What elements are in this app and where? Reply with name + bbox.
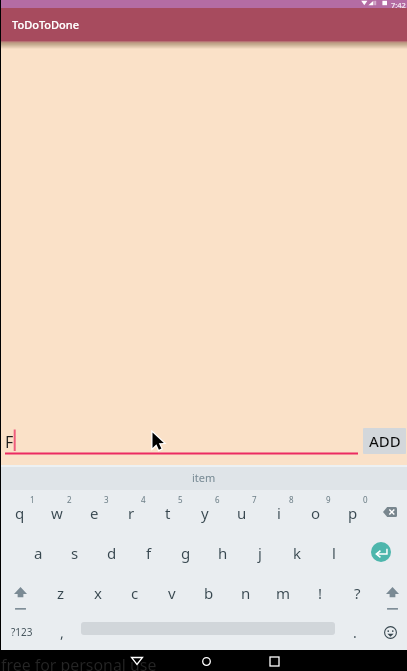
staticText: . [353,623,357,642]
staticText: k [293,543,302,563]
staticText: 0 [363,494,368,505]
staticText: 4 [141,494,146,505]
staticText: free for personal use [1,654,157,671]
staticText: 9 [326,494,331,505]
button[interactable]: Home [188,653,224,669]
button[interactable]: ?123 [2,610,42,650]
staticText: h [218,543,228,563]
staticText: ToDoToDone [12,17,80,32]
button[interactable]: k [279,530,315,570]
staticText: i [277,503,281,523]
staticText: 3 [104,494,109,505]
staticText: z [57,583,65,603]
staticText: v [168,583,176,603]
button[interactable]: Enter [363,530,399,570]
staticText: g [181,543,191,563]
staticText: n [241,583,251,603]
button[interactable]: l [316,530,352,570]
staticText: s [71,543,79,563]
staticText: b [204,583,214,603]
staticText: ADD [369,431,401,451]
button[interactable]: , [44,610,80,650]
button[interactable]: j [242,530,278,570]
staticText: e [90,503,99,523]
button[interactable]: c [117,570,153,610]
button[interactable]: w [39,490,75,530]
staticText: F [5,431,14,453]
button[interactable]: Shift [374,570,407,610]
staticText: 1 [30,494,35,505]
staticText: p [348,503,358,523]
button[interactable]: F [5,429,358,454]
staticText: r [128,503,135,523]
staticText: d [107,543,117,563]
button[interactable]: s [57,530,93,570]
staticText: 2 [67,494,72,505]
button[interactable]: ! [302,570,338,610]
staticText: 6 [215,494,220,505]
button[interactable]: v [154,570,190,610]
button[interactable]: z [43,570,79,610]
button[interactable]: n [228,570,264,610]
button[interactable]: ToDoToDone [0,8,407,41]
staticText: 7:42 [391,0,406,8]
button[interactable]: Shift [2,570,38,610]
staticText: a [34,543,43,563]
button[interactable]: d [94,530,130,570]
button[interactable]: item [0,465,407,490]
button[interactable]: ? [339,570,375,610]
staticText: ?123 [11,625,33,639]
staticText: 8 [289,494,294,505]
button[interactable]: g [168,530,204,570]
button[interactable]: q [2,490,38,530]
button[interactable]: t [150,490,186,530]
button[interactable]: Recents [256,653,292,669]
button[interactable]: Emoji [372,610,407,650]
staticText: f [146,543,152,563]
staticText: w [51,503,63,523]
button[interactable]: x [80,570,116,610]
staticText: m [276,583,291,603]
button[interactable]: u [224,490,260,530]
button[interactable]: r [113,490,149,530]
button[interactable]: Backspace [372,490,407,530]
staticText: c [131,583,139,603]
button[interactable]: p [335,490,371,530]
staticText: , [60,623,64,642]
staticText: u [237,503,247,523]
button[interactable]: y [187,490,223,530]
button[interactable]: f [131,530,167,570]
staticText: ? [354,583,361,603]
button[interactable]: ADD [363,428,406,454]
button[interactable]: h [205,530,241,570]
staticText: ! [318,583,323,603]
staticText: item [192,470,216,485]
button[interactable]: e [76,490,112,530]
staticText: 7 [252,494,257,505]
staticText: j [258,543,262,563]
button[interactable]: i [261,490,297,530]
staticText: l [332,543,336,563]
staticText: y [201,503,209,523]
staticText: q [15,503,25,523]
button[interactable]: Back [119,653,155,669]
button[interactable]: o [298,490,334,530]
staticText: x [94,583,102,603]
staticText: t [165,503,171,523]
button[interactable]: m [265,570,301,610]
staticText: o [311,503,321,523]
staticText: 5 [178,494,183,505]
button[interactable]: . [337,610,373,650]
button[interactable]: b [191,570,227,610]
button[interactable]: a [20,530,56,570]
